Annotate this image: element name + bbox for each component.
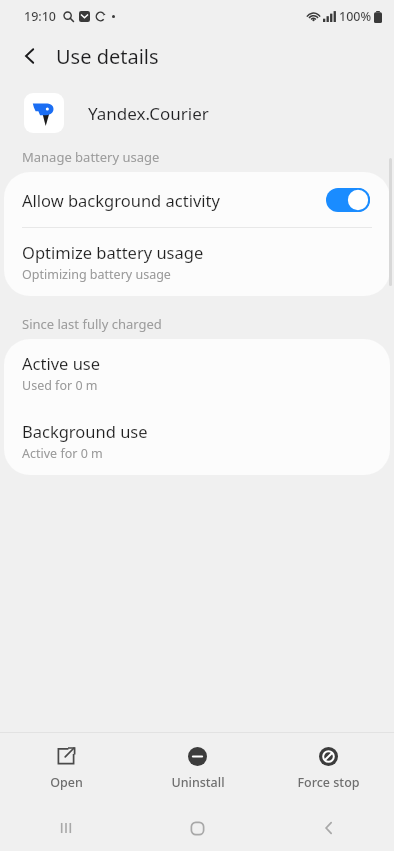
button[interactable]: Home [132,805,263,851]
button[interactable]: Open [0,732,132,805]
button[interactable]: Back [263,805,394,851]
button[interactable]: Optimize battery usage [4,228,390,296]
button[interactable]: Back [10,36,50,76]
staticText: Used for 0 m [22,377,98,394]
staticText: 19:10 [24,8,57,25]
staticText: Active for 0 m [22,445,103,462]
staticText: Allow background activity [22,189,326,211]
staticText: 100% [339,8,372,25]
button[interactable]: Active use [4,339,390,407]
staticText: Background use [22,420,148,442]
button[interactable]: Recents [0,805,132,851]
staticText: Uninstall [171,774,225,791]
button[interactable]: Force stop [263,732,394,805]
staticText: Use details [56,43,159,70]
button[interactable]: Uninstall [132,732,263,805]
staticText: Optimize battery usage [22,241,204,263]
staticText: Active use [22,352,101,374]
button[interactable]: Allow background activity [4,172,390,227]
staticText: Since last fully charged [22,315,162,333]
staticText: Manage battery usage [22,148,160,166]
staticText: Open [50,774,83,791]
staticText: Yandex.Courier [88,102,209,125]
button[interactable]: Background use [4,407,390,475]
staticText: Optimizing battery usage [22,266,171,283]
staticText: Force stop [297,774,360,791]
